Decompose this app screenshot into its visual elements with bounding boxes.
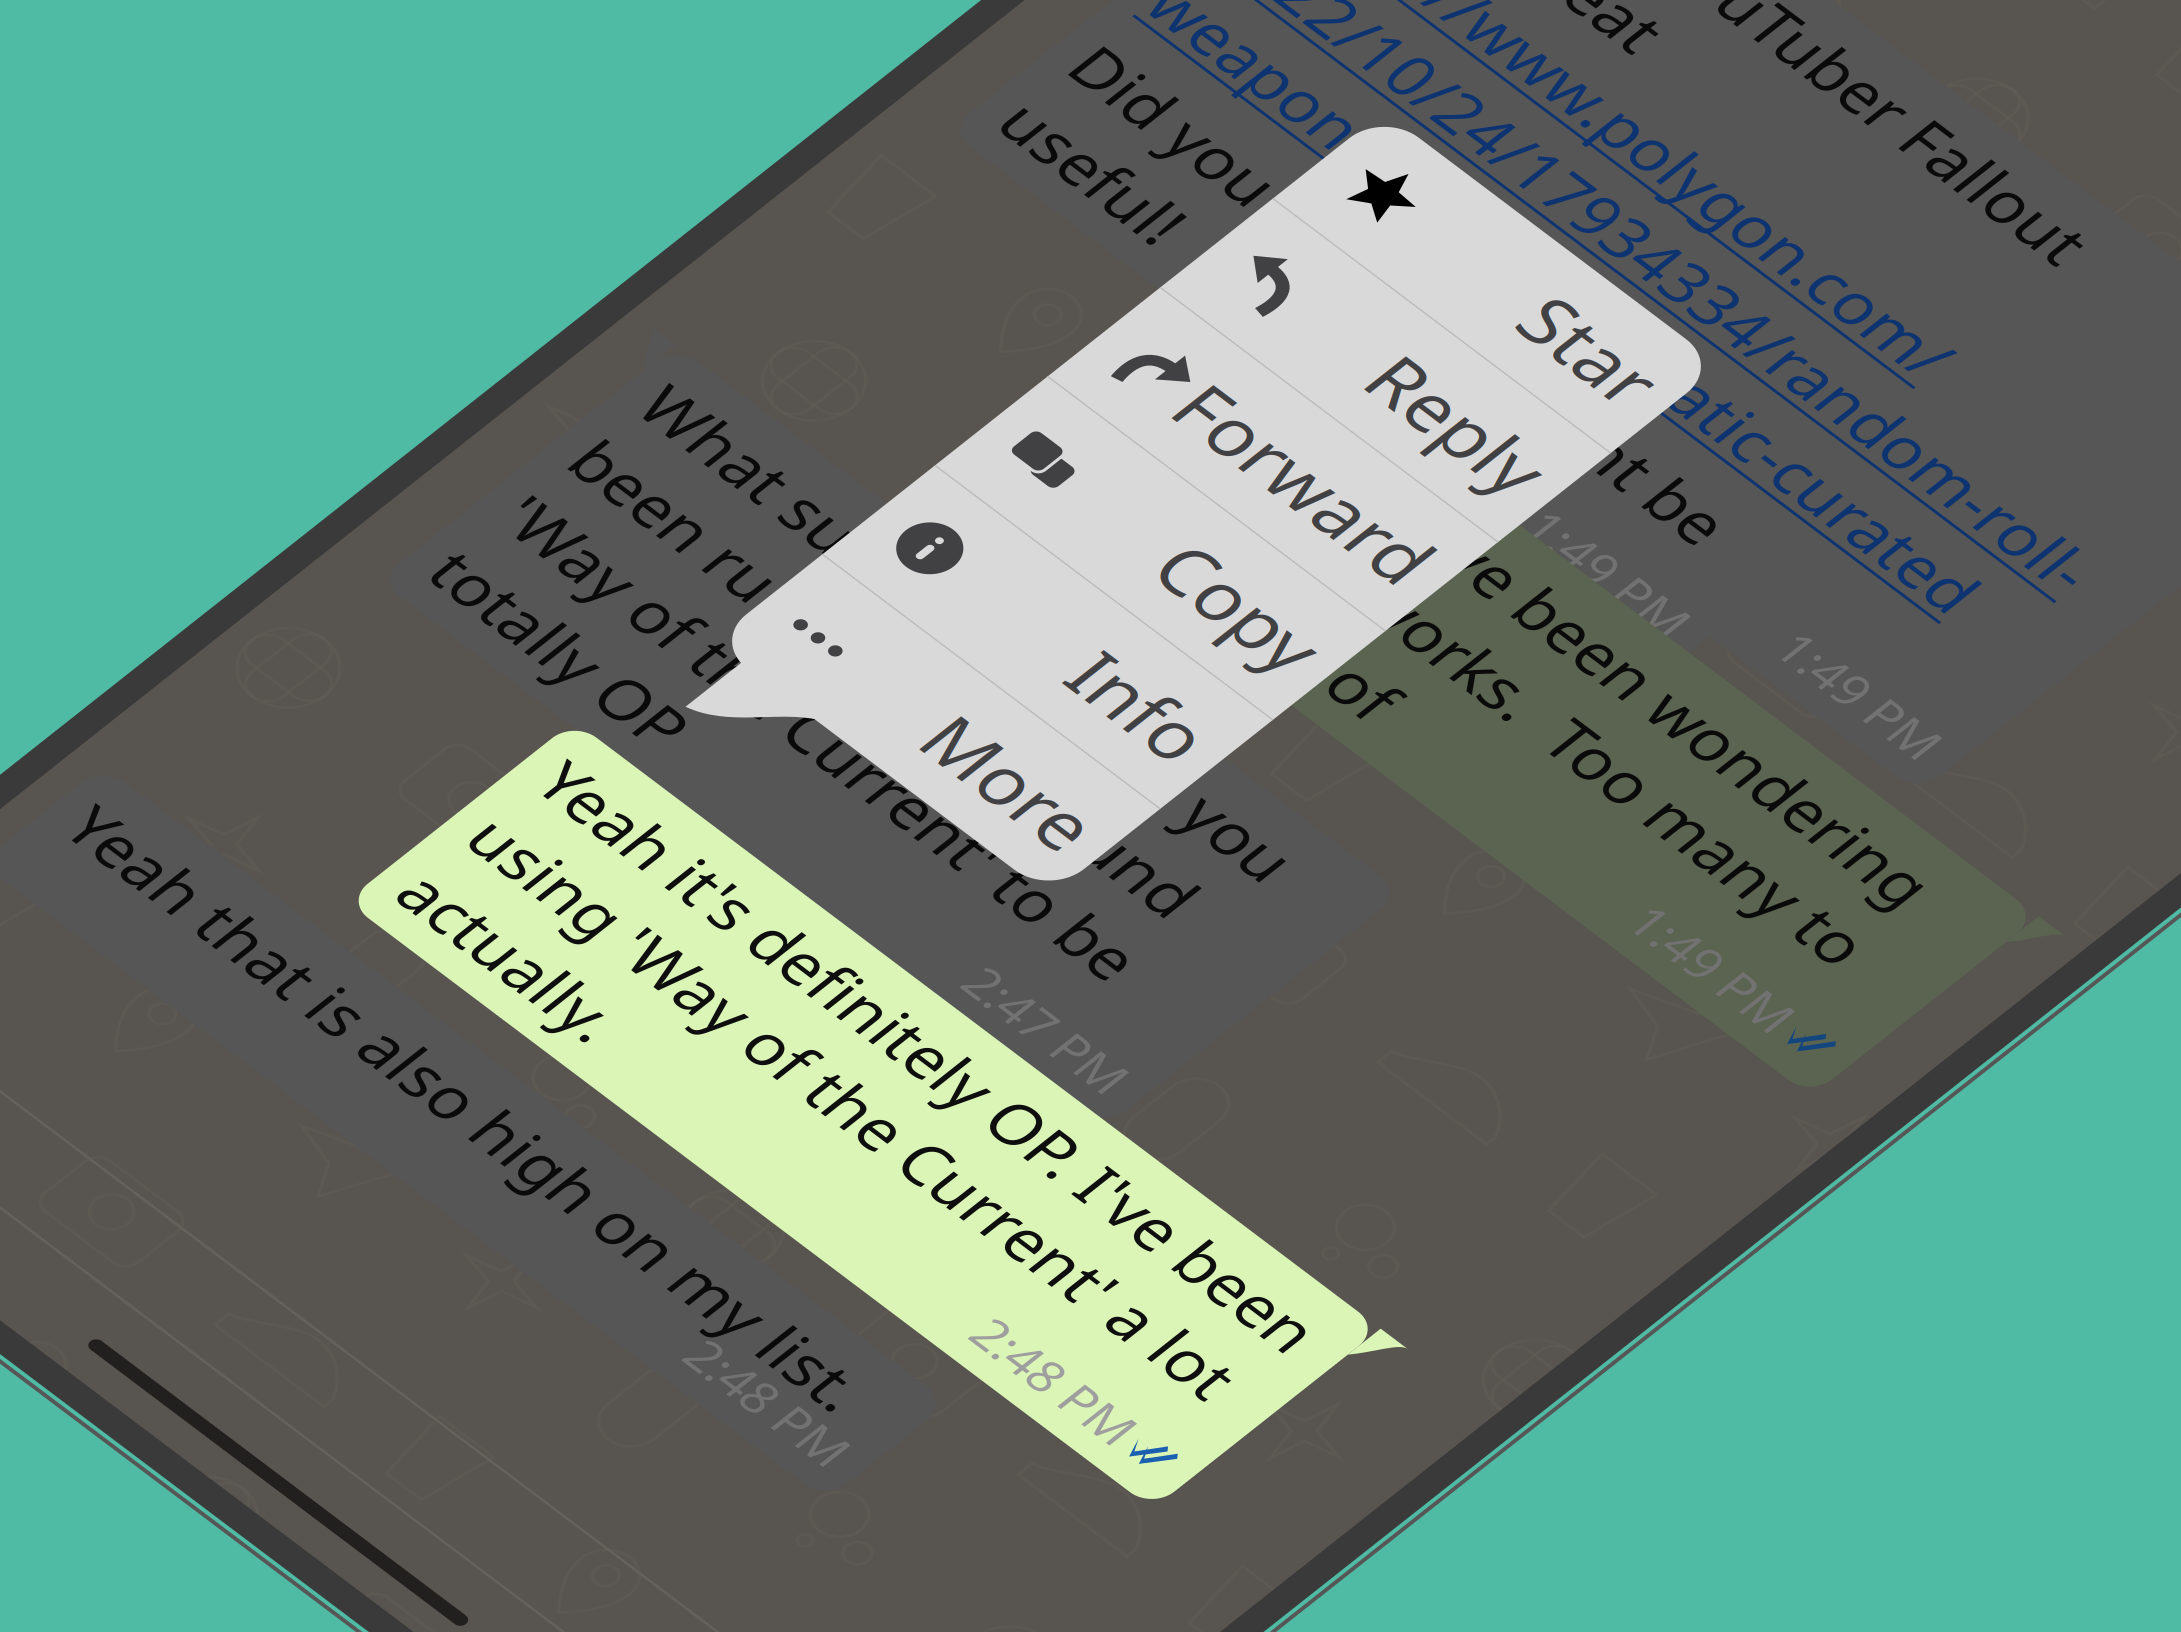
staticText: https://www.polygon.com/ [82,1012,885,1097]
staticText: weapon-best-perks-static-curated [82,1190,1092,1275]
staticText: 1:49 PM [1007,1344,1192,1410]
staticText: Forward [426,1498,717,1597]
button[interactable]: Forward [320,1476,743,1618]
staticText: Reply [526,1354,717,1453]
staticText: Oh nice, I've been wondering [419,1462,1300,1547]
staticText: 1:49 PM [747,1400,932,1466]
staticText: Did you see this? Might be [82,1290,876,1375]
staticText: useful! [82,1379,285,1464]
button[interactable]: Reply [320,1333,743,1475]
staticText: Yeah this YouTuber Fallout [82,834,879,919]
button[interactable]: Copy [320,1620,743,1632]
staticText: 2022/10/24/17934334/random-roll- [82,1101,1149,1186]
staticText: Star [576,1211,717,1310]
button[interactable]: Star [320,1189,743,1331]
staticText: -forsaken-guide/ [82,1279,583,1364]
staticText: guy is great [82,923,435,1008]
staticText: how that works. Too many to [419,1551,1307,1632]
